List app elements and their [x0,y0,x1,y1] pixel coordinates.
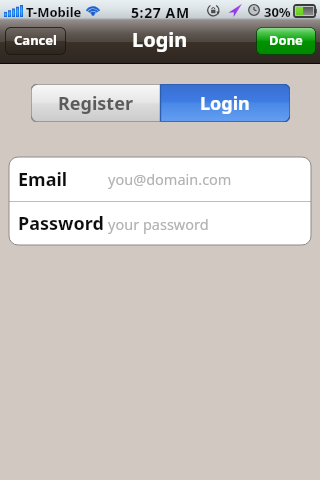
button[interactable]: Done [256,27,316,55]
button[interactable]: Register [31,84,160,122]
staticText: Done [269,31,303,49]
button[interactable]: Cancel [5,27,66,55]
staticText: T-Mobile [26,3,82,21]
staticText: 30% [264,3,291,21]
staticText: Email [18,167,68,192]
staticText: Login [200,91,250,116]
staticText: you@domain.com [108,169,232,189]
staticText: your password [108,214,209,234]
staticText: Password [18,211,104,236]
button[interactable]: Email [9,157,311,201]
staticText: Register [58,91,133,116]
button[interactable]: Password [9,202,311,245]
button[interactable]: Login [160,84,290,122]
staticText: Cancel [14,31,57,49]
staticText: Login [132,26,188,53]
staticText: 5:27 AM [131,3,190,22]
